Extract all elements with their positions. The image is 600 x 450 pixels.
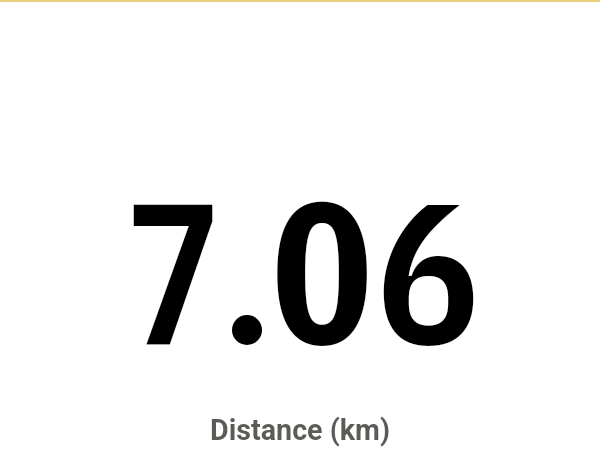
staticText: Distance (km) xyxy=(210,413,390,447)
staticText: 6 xyxy=(376,141,481,399)
staticText: 0 xyxy=(269,152,376,397)
staticText: 7 xyxy=(128,135,218,401)
